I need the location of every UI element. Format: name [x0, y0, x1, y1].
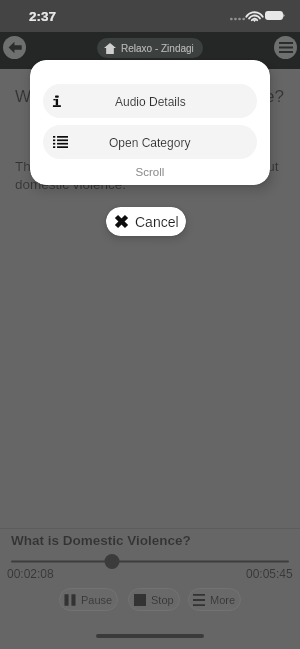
button[interactable]: More — [188, 588, 241, 611]
staticText: Relaxo - Zindagi — [121, 43, 194, 54]
button[interactable]: Audio Details — [43, 84, 257, 118]
staticText: Scroll — [43, 166, 257, 179]
staticText: 00:05:45 — [246, 567, 293, 580]
staticText: Stop — [151, 594, 174, 606]
staticText: What is Domestic Violence? — [11, 533, 191, 548]
button[interactable]: Pause — [59, 588, 118, 611]
button[interactable]: Menu — [274, 36, 297, 59]
staticText: Audio Details — [115, 95, 186, 108]
staticText: 00:02:08 — [7, 567, 54, 580]
staticText: Open Category — [109, 136, 191, 149]
staticText: What exactly is Domestic Violence? — [15, 87, 284, 106]
staticText: More — [210, 594, 236, 606]
staticText: Pause — [81, 594, 113, 606]
button[interactable]: Back — [3, 36, 26, 59]
staticText: 2:37 — [29, 9, 57, 24]
button[interactable]: Open Category — [43, 125, 257, 159]
staticText: This audio explains the legal meaning ab… — [15, 159, 279, 191]
button[interactable]: Relaxo - Zindagi — [104, 38, 194, 58]
button[interactable]: Stop — [128, 588, 180, 611]
button[interactable]: Cancel — [106, 207, 186, 236]
staticText: Cancel — [135, 214, 179, 230]
